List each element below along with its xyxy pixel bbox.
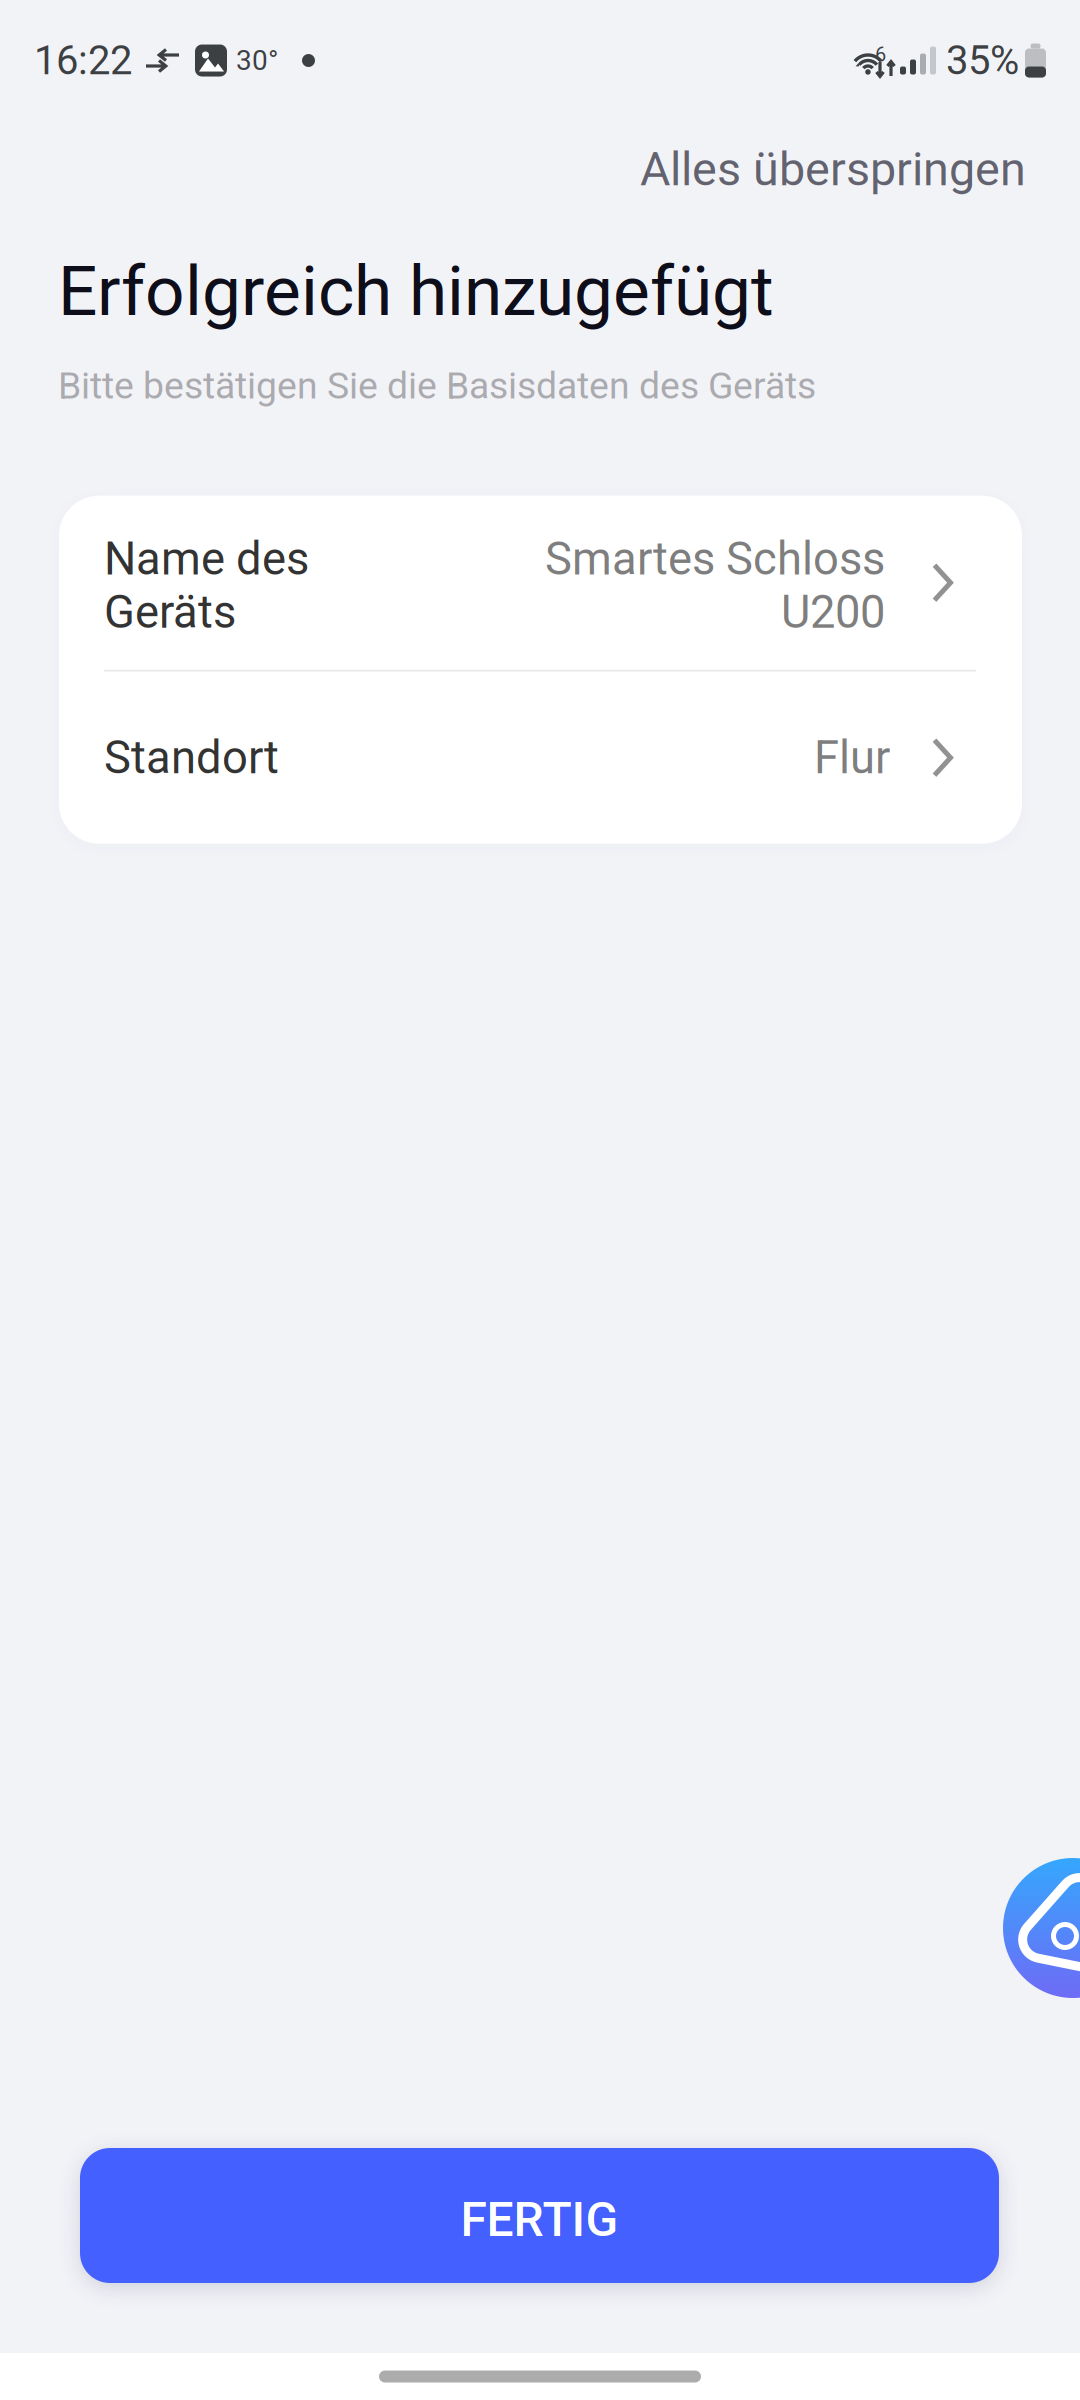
staticText: Smartes Schloss <box>545 533 885 586</box>
staticText: Bitte bestätigen Sie die Basisdaten des … <box>58 364 816 408</box>
staticText: Geräts <box>104 586 236 639</box>
staticText: 35% <box>946 37 1019 84</box>
staticText: Name des <box>104 533 309 586</box>
staticText: 16:22 <box>34 37 132 84</box>
button[interactable]: Name des <box>59 496 1022 670</box>
staticText: 6 <box>875 43 886 66</box>
staticText: U200 <box>781 586 885 639</box>
staticText: FERTIG <box>460 2191 618 2248</box>
staticText: Flur <box>814 731 890 784</box>
button[interactable]: Standort <box>59 672 1022 844</box>
staticText: Alles überspringen <box>640 142 1026 197</box>
button[interactable]: Sprachassistent <box>1003 1858 1080 1998</box>
staticText: 30° <box>236 44 278 77</box>
button[interactable]: FERTIG <box>80 2148 999 2283</box>
staticText: Standort <box>104 731 279 784</box>
staticText: Erfolgreich hinzugefügt <box>58 251 774 332</box>
button[interactable]: Alles überspringen <box>640 128 1080 211</box>
